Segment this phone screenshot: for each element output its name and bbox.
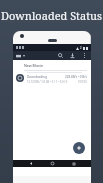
button[interactable]: Home <box>49 160 56 167</box>
staticText: Downloaded Status <box>1 8 102 23</box>
staticText: 2 <box>80 46 82 50</box>
button[interactable]: More options <box>81 52 88 59</box>
staticText: 10/100 <box>78 80 87 84</box>
button[interactable]: Back <box>27 160 34 167</box>
button[interactable]: Add download <box>73 142 85 154</box>
button[interactable]: Downloading <box>13 71 91 85</box>
staticText: 228.8B/s • 0 B/s <box>65 75 87 79</box>
staticText: New Movie <box>24 63 43 68</box>
staticText: Downloading <box>27 75 47 79</box>
button[interactable]: Search <box>57 52 64 59</box>
button[interactable]: Downloads <box>69 52 76 59</box>
staticText: 13.72 MB / 1.8 GB • 0 / 1 • 0.0 / 0 <box>27 80 68 84</box>
button[interactable]: Select category <box>16 54 25 58</box>
button[interactable]: Recent apps <box>70 160 77 167</box>
